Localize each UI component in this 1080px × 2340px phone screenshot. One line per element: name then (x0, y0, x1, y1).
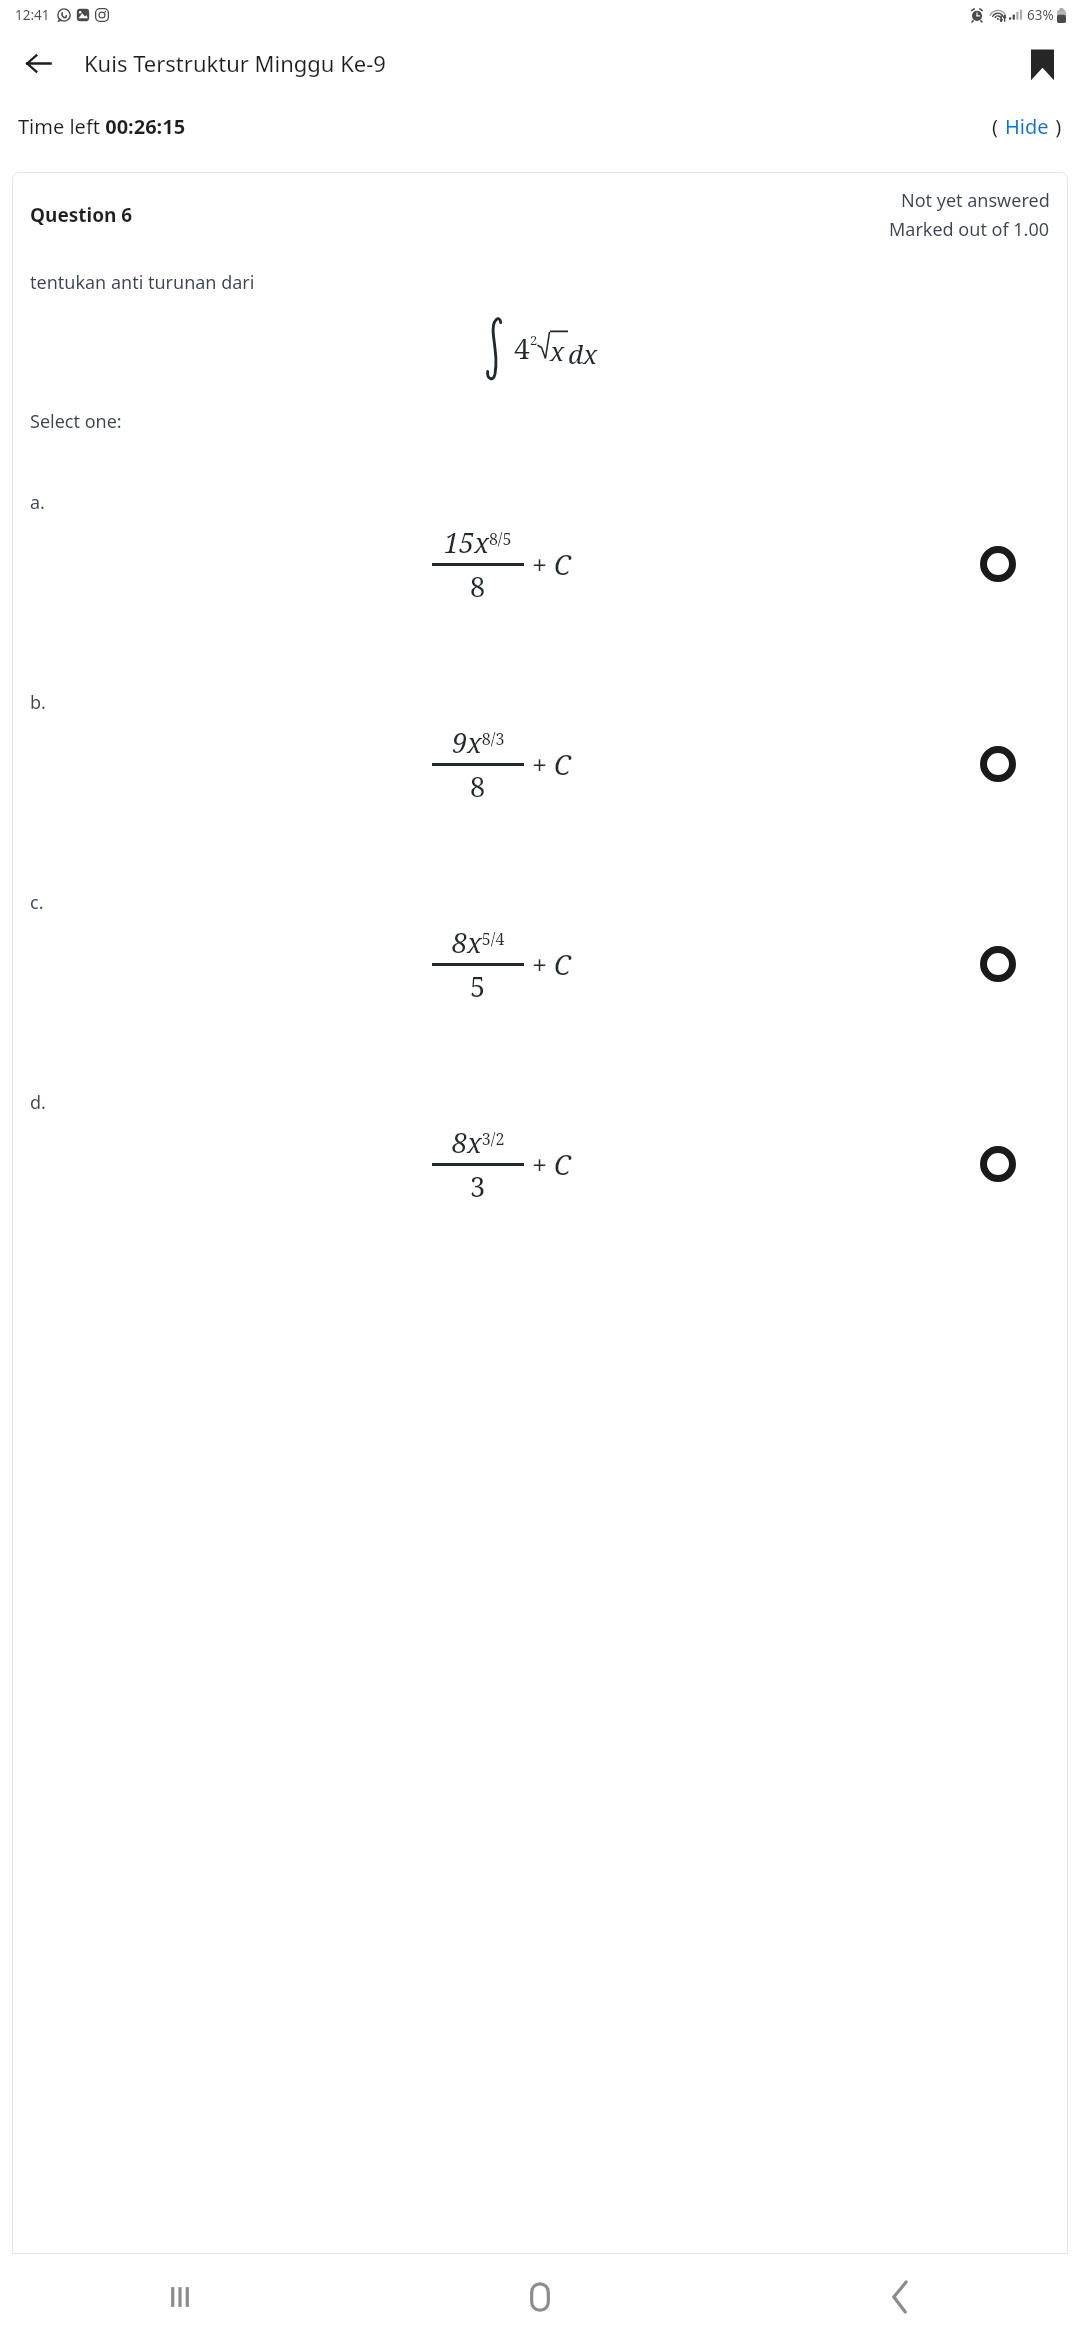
button[interactable]: a. (12, 464, 1068, 664)
button[interactable]: Back (10, 35, 66, 91)
staticText: Hide (1005, 113, 1049, 140)
button[interactable]: Select option d. (970, 1136, 1026, 1192)
button[interactable]: d. (12, 1064, 1068, 1264)
button[interactable]: c. (12, 864, 1068, 1064)
button[interactable]: Select option c. (970, 936, 1026, 992)
staticText: dx (568, 336, 598, 371)
staticText: b. (30, 690, 46, 715)
button[interactable]: Back (720, 2254, 1080, 2340)
staticText: 4 (514, 329, 530, 367)
staticText: + C (532, 546, 572, 583)
button[interactable]: Select option a. (970, 536, 1026, 592)
staticText: 9x8/3 (452, 724, 505, 761)
staticText: 8x3/2 (452, 1124, 505, 1161)
staticText: 8 (470, 768, 486, 805)
staticText: + C (532, 1146, 572, 1183)
button[interactable]: b. (12, 664, 1068, 864)
button[interactable]: Select option b. (970, 736, 1026, 792)
staticText: Marked out of 1.00 (889, 217, 1050, 242)
staticText: 12:41 (15, 6, 50, 24)
staticText: x (550, 333, 565, 368)
staticText: 5 (470, 968, 486, 1005)
staticText: Kuis Terstruktur Minggu Ke-9 (84, 48, 386, 78)
staticText: Select one: (30, 409, 122, 434)
button[interactable]: Recent apps (0, 2254, 360, 2340)
staticText: 8 (470, 568, 486, 605)
staticText: Time left 00:26:15 (18, 113, 186, 140)
staticText: 2 (530, 331, 538, 349)
button[interactable]: Hide (1004, 113, 1050, 140)
staticText: c. (30, 890, 44, 915)
staticText: ) (1050, 113, 1062, 140)
staticText: 8x5/4 (452, 924, 505, 961)
staticText: d. (30, 1090, 46, 1115)
staticText: 3 (470, 1168, 486, 1205)
staticText: Not yet answered (901, 188, 1050, 213)
staticText: 15x8/5 (444, 524, 512, 561)
staticText: tentukan anti turunan dari (30, 270, 255, 295)
button[interactable]: Home (360, 2254, 720, 2340)
staticText: Question 6 (30, 202, 133, 228)
button[interactable]: Bookmark (1014, 35, 1070, 91)
staticText: ( (992, 113, 1004, 140)
staticText: + C (532, 946, 572, 983)
staticText: a. (30, 490, 45, 515)
staticText: 63% (1027, 6, 1054, 24)
staticText: + C (532, 746, 572, 783)
